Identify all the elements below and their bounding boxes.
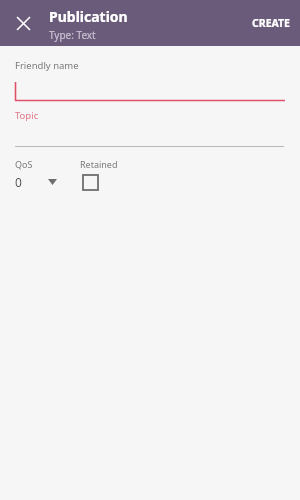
staticText: Publication xyxy=(49,7,128,26)
staticText: QoS xyxy=(15,158,33,170)
staticText: Retained xyxy=(80,158,118,170)
button[interactable]: QoS xyxy=(15,158,71,190)
staticText: Friendly name xyxy=(15,59,79,72)
button[interactable]: Close xyxy=(9,9,37,37)
button[interactable] xyxy=(0,81,300,102)
staticText: Type: Text xyxy=(49,28,96,42)
other: Retained xyxy=(83,175,98,190)
staticText: Topic xyxy=(15,109,39,122)
staticText: 0 xyxy=(15,174,22,190)
button[interactable]: CREATE xyxy=(242,0,300,46)
other: Select QoS xyxy=(48,179,57,185)
staticText: CREATE xyxy=(252,16,290,30)
button[interactable]: Retained xyxy=(80,158,118,190)
